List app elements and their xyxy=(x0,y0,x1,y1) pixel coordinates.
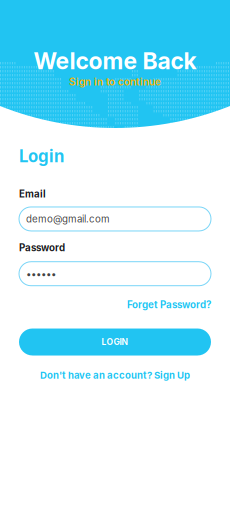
staticText: LOGIN xyxy=(101,337,128,347)
staticText: Forget Password? xyxy=(127,299,211,310)
staticText: Sign in to continue xyxy=(69,76,161,88)
staticText: Password xyxy=(19,242,65,254)
staticText: •••••• xyxy=(26,268,56,280)
button[interactable]: LOGIN xyxy=(19,328,211,355)
staticText: Email xyxy=(19,188,46,200)
staticText: demo@gmail.com xyxy=(26,213,110,225)
staticText: Don't have an account? Sign Up xyxy=(40,369,190,381)
staticText: Welcome Back xyxy=(33,47,196,75)
staticText: Login xyxy=(19,146,64,166)
button[interactable]: Forget Password? xyxy=(127,299,211,310)
button[interactable]: Don't have an account? Sign Up xyxy=(19,369,211,381)
